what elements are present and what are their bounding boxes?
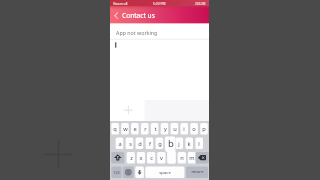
staticText: return	[191, 169, 204, 175]
staticText: g	[158, 140, 162, 148]
staticText: Steam:ull	[113, 1, 128, 5]
staticText: j	[178, 140, 180, 148]
staticText: a	[118, 140, 122, 148]
button[interactable]: f	[146, 138, 154, 150]
staticText: y	[164, 125, 167, 133]
button[interactable]: u	[171, 123, 179, 135]
staticText: d	[138, 140, 142, 148]
button[interactable]: i	[180, 123, 188, 135]
button[interactable]: o	[190, 123, 198, 135]
button[interactable]: App not working	[116, 29, 206, 38]
staticText: Contact us	[122, 11, 155, 20]
button[interactable]: q	[111, 123, 119, 135]
button[interactable]: Contact us	[122, 11, 155, 21]
staticText: f	[149, 140, 151, 148]
staticText: 123	[113, 170, 120, 175]
button[interactable]: g	[156, 138, 164, 150]
staticText: r	[144, 125, 147, 133]
staticText: w	[123, 125, 128, 133]
button[interactable]: Back	[110, 9, 122, 22]
button[interactable]: e	[131, 123, 139, 135]
button[interactable]: t	[151, 123, 159, 135]
button[interactable]: return	[186, 166, 208, 178]
staticText: u	[173, 125, 177, 133]
staticText: App not working	[116, 29, 158, 36]
button[interactable]: s	[126, 138, 134, 150]
staticText: v	[160, 154, 163, 162]
staticText: space	[159, 169, 171, 175]
button[interactable]: x	[137, 152, 145, 164]
button[interactable]: d	[136, 138, 144, 150]
staticText: b	[168, 137, 174, 150]
staticText: p	[202, 125, 206, 133]
staticText: 265.98	[195, 1, 206, 5]
staticText: x	[139, 154, 143, 162]
staticText: 5:20 PM	[153, 1, 166, 5]
staticText: l	[198, 140, 200, 148]
button[interactable]: z	[127, 152, 135, 164]
staticText: i	[183, 125, 185, 133]
button[interactable]: r	[141, 123, 149, 135]
staticText: t	[154, 125, 157, 133]
staticText: k	[187, 140, 191, 148]
button[interactable]: w	[121, 123, 129, 135]
button[interactable]: 123	[111, 166, 121, 178]
button[interactable]: j	[175, 138, 183, 150]
staticText: c	[150, 154, 153, 162]
button[interactable]: l	[195, 138, 203, 150]
staticText: m	[189, 154, 195, 162]
staticText: s	[129, 140, 132, 148]
staticText: z	[130, 154, 133, 162]
button[interactable]: k	[185, 138, 193, 150]
button[interactable]: a	[116, 138, 124, 150]
button[interactable]: n	[178, 152, 186, 164]
button[interactable]: c	[147, 152, 155, 164]
button[interactable]: m	[188, 152, 196, 164]
staticText: q	[113, 125, 117, 133]
button[interactable]: y	[161, 123, 169, 135]
staticText: e	[133, 125, 137, 133]
button[interactable]: v	[157, 152, 165, 164]
staticText: n	[180, 154, 184, 162]
staticText: o	[192, 125, 196, 133]
button[interactable]: p	[200, 123, 208, 135]
button[interactable]: space	[145, 166, 184, 178]
